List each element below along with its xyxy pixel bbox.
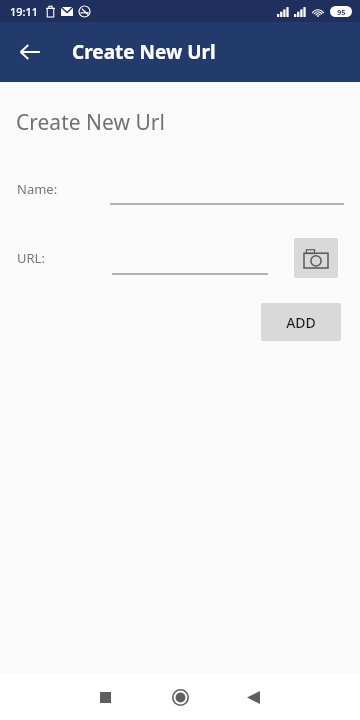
staticText: URL: xyxy=(17,249,45,267)
staticText: Name: xyxy=(17,180,58,198)
button[interactable]: Take photo xyxy=(294,238,338,278)
staticText: ADD xyxy=(286,313,316,332)
button[interactable]: Recent apps xyxy=(81,674,129,720)
button[interactable] xyxy=(112,255,268,275)
staticText: Create New Url xyxy=(72,39,216,65)
button[interactable]: ADD xyxy=(261,303,341,341)
button[interactable]: Back xyxy=(229,674,277,720)
staticText: Create New Url xyxy=(16,108,165,137)
button[interactable]: Home xyxy=(156,674,204,720)
button[interactable] xyxy=(110,185,344,205)
staticText: 95 xyxy=(337,7,346,17)
staticText: 19:11 xyxy=(10,4,39,19)
button[interactable]: Back xyxy=(6,28,54,76)
